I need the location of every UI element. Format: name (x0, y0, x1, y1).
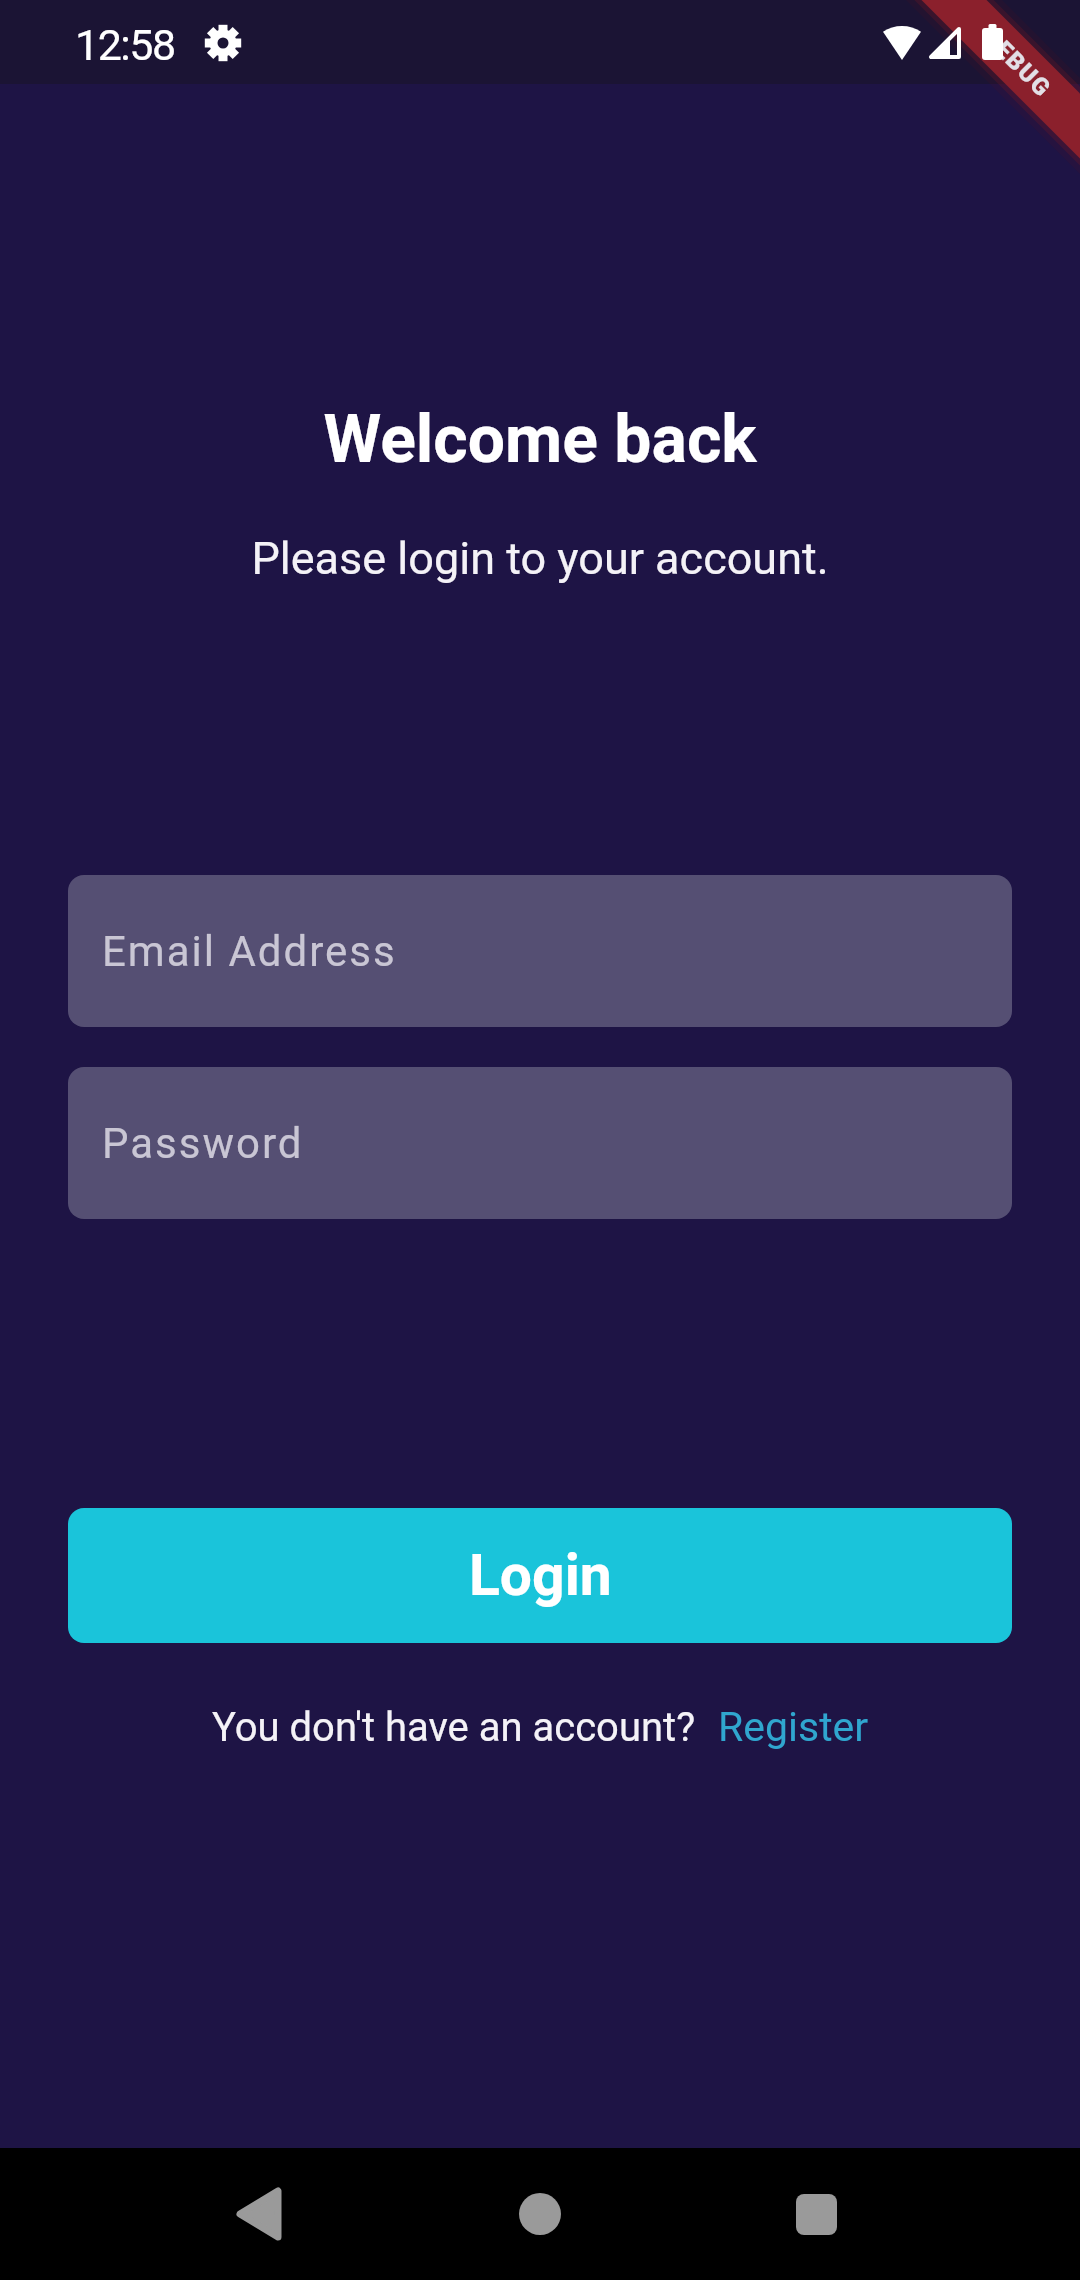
staticText: You don't have an account? (212, 1704, 696, 1751)
button[interactable]: Register (718, 1703, 869, 1751)
button[interactable] (214, 2169, 304, 2259)
button[interactable] (495, 2169, 585, 2259)
staticText: Welcome back (0, 401, 1080, 478)
button[interactable]: Password (68, 1067, 1012, 1219)
button[interactable]: Email Address (68, 875, 1012, 1027)
staticText: DEBUG (977, 23, 1057, 103)
staticText: 12:58 (75, 20, 175, 70)
button[interactable] (771, 2169, 861, 2259)
staticText: Please login to your account. (0, 532, 1080, 585)
staticText: Password (102, 1119, 304, 1168)
staticText: Email Address (102, 927, 397, 976)
staticText: Login (469, 1542, 612, 1609)
button[interactable]: Login (68, 1508, 1012, 1643)
